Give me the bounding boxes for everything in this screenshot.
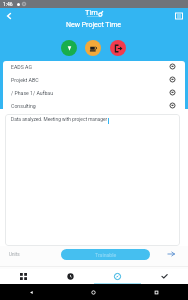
staticText: New Project Time (66, 21, 122, 29)
button[interactable]: Break (85, 40, 101, 56)
staticText: / Phase 1/ Aufbau (11, 90, 54, 96)
button[interactable]: Back (1, 8, 16, 23)
button[interactable]: / Phase 1/ Aufbau (3, 86, 185, 99)
button[interactable]: Home (62, 284, 125, 300)
staticText: Consulting (11, 103, 36, 109)
staticText: Units (9, 252, 20, 257)
button[interactable]: Consulting (3, 99, 185, 112)
button[interactable]: Done (141, 269, 188, 284)
staticText: 1:46 (3, 1, 13, 7)
button[interactable]: Stop (110, 40, 126, 56)
staticText: Data analyzed. Meeting with project mana… (11, 117, 108, 123)
button[interactable]: Recents (125, 284, 188, 300)
staticText: EADS AG (11, 64, 32, 70)
button[interactable]: EADS AG (3, 60, 185, 73)
button[interactable]: Trainable (61, 249, 150, 260)
button[interactable]: Next (166, 249, 176, 259)
button[interactable]: List (171, 8, 186, 23)
staticText: Trainable (95, 252, 117, 258)
staticText: Projekt ABC (11, 77, 39, 83)
button[interactable]: Projekt ABC (3, 73, 185, 86)
button[interactable]: Recent (47, 269, 94, 284)
button[interactable]: Dashboard (0, 269, 47, 284)
button[interactable]: Start (61, 40, 77, 56)
staticText: Tim (85, 8, 98, 17)
button[interactable]: Back (0, 284, 62, 300)
button[interactable]: Projects (94, 269, 141, 284)
